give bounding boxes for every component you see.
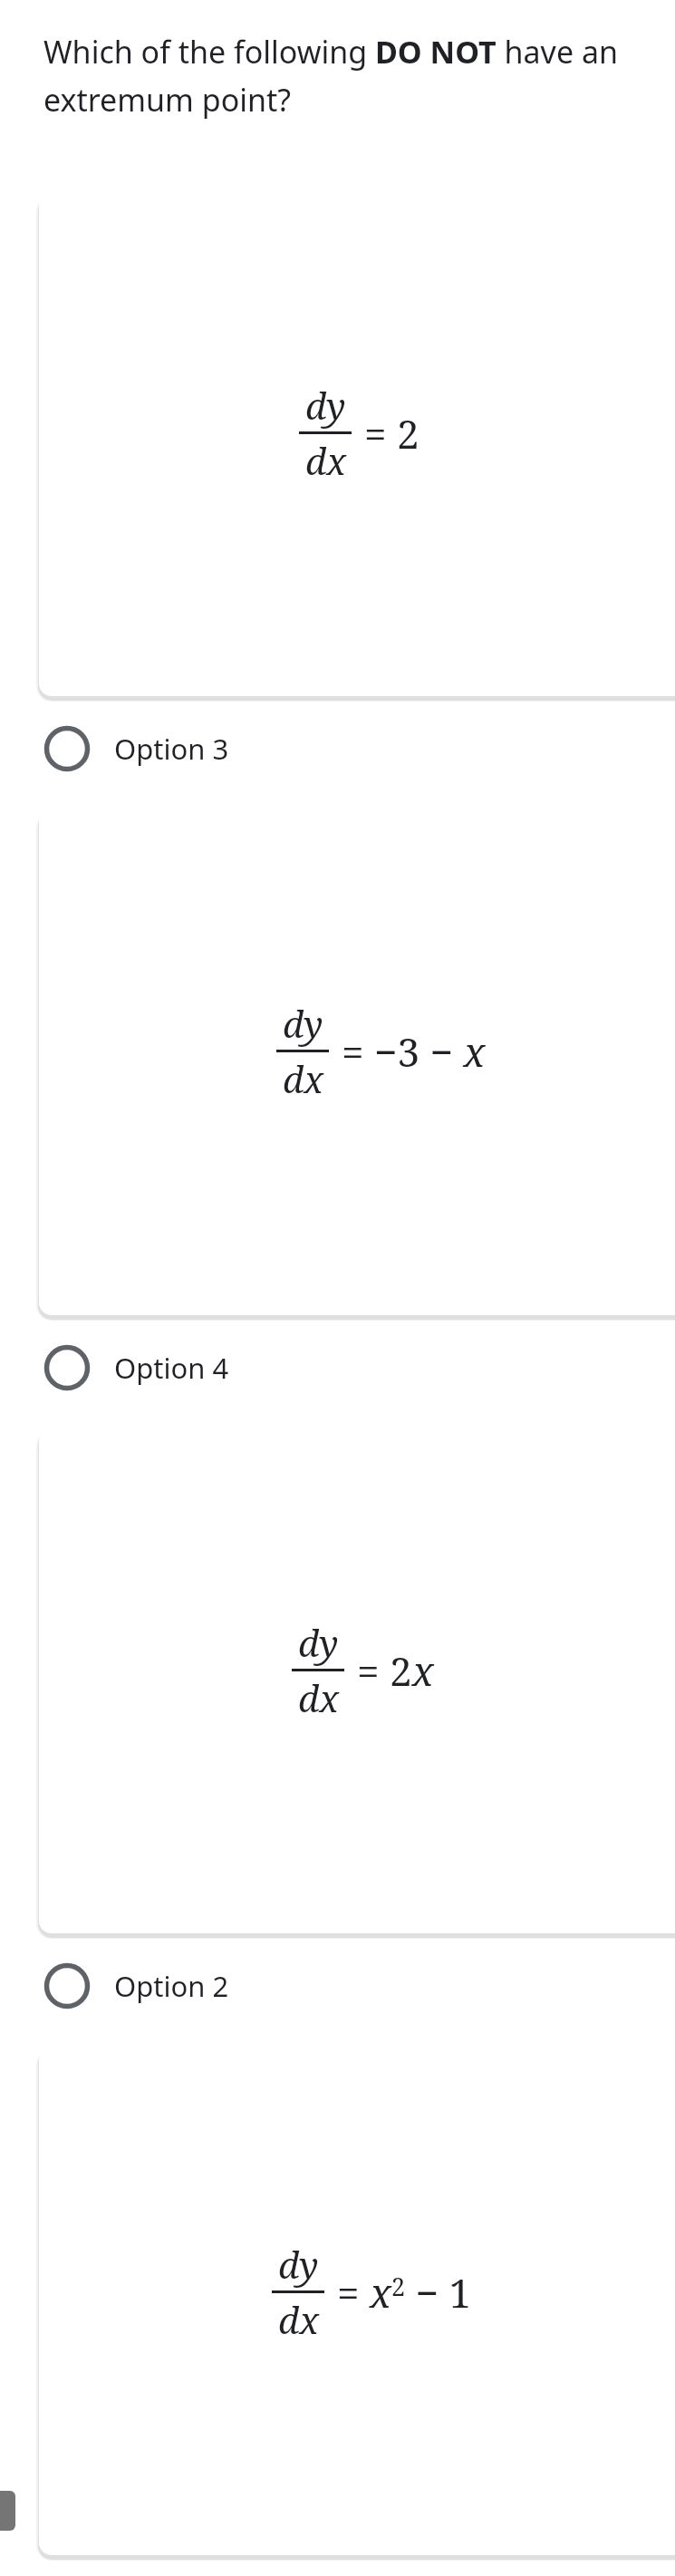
button[interactable] [39, 1429, 675, 1933]
staticText: dy [298, 1618, 339, 1667]
staticText: Which of the following DO NOT have an ex… [43, 31, 657, 121]
staticText: Option 2 [114, 1967, 229, 2005]
button[interactable]: Select Option 4 [0, 1335, 675, 1400]
staticText: Option 3 [114, 730, 229, 768]
other: Select Option 2 [43, 1962, 91, 2009]
staticText: dy [283, 999, 323, 1048]
staticText: dx [298, 1673, 339, 1722]
staticText: dx [278, 2295, 319, 2344]
staticText: = x2 − 1 [337, 2265, 472, 2319]
button[interactable]: Select Option 2 [0, 1953, 675, 2019]
staticText: = 2x [357, 1643, 434, 1698]
staticText: dx [305, 436, 346, 485]
staticText: dx [283, 1054, 323, 1103]
other: Select Option 4 [43, 1344, 91, 1391]
button[interactable]: Scroll handle [0, 2491, 15, 2531]
button[interactable] [39, 810, 675, 1315]
other: Select Option 3 [43, 725, 91, 772]
button[interactable] [39, 195, 675, 696]
button[interactable]: Select Option 3 [0, 716, 675, 781]
staticText: dy [278, 2240, 319, 2289]
button[interactable] [39, 2048, 675, 2555]
staticText: = −3 − x [342, 1024, 486, 1079]
staticText: Option 4 [114, 1349, 229, 1387]
staticText: dy [305, 381, 346, 430]
staticText: = 2 [364, 406, 419, 460]
